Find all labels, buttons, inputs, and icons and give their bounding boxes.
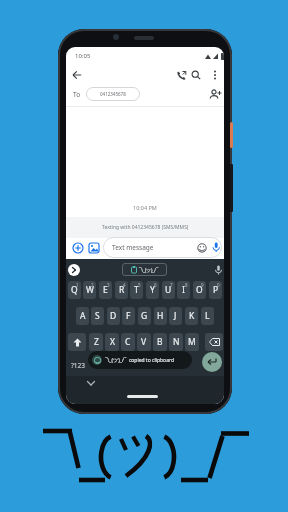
button[interactable]: Y xyxy=(146,281,159,299)
staticText: 5 xyxy=(138,282,141,288)
staticText: I xyxy=(182,284,185,296)
button[interactable]: ?123 xyxy=(68,357,88,374)
staticText: Z xyxy=(94,336,99,348)
button[interactable]: M xyxy=(185,333,199,351)
button[interactable] xyxy=(72,70,82,80)
button[interactable]: I xyxy=(177,281,190,299)
staticText: T xyxy=(134,284,139,296)
staticText: 4 xyxy=(123,282,126,288)
staticText: 10:04 PM xyxy=(133,204,157,211)
staticText: P xyxy=(213,284,219,296)
staticText: 10:05 xyxy=(75,52,91,60)
staticText: H xyxy=(157,310,164,322)
staticText: ?123 xyxy=(71,361,85,370)
staticText: D xyxy=(110,310,117,322)
button[interactable]: D xyxy=(107,307,120,325)
button[interactable]: T xyxy=(130,281,143,299)
button[interactable]: 0412345678 xyxy=(86,87,140,101)
staticText: Text message xyxy=(112,243,154,252)
button[interactable] xyxy=(211,242,221,253)
staticText: O xyxy=(196,284,203,296)
staticText: 0 xyxy=(217,282,220,288)
button[interactable]: C xyxy=(121,333,135,351)
button[interactable]: H xyxy=(154,307,167,325)
button[interactable]: V xyxy=(137,333,151,351)
button[interactable] xyxy=(68,264,80,276)
button[interactable] xyxy=(68,333,86,351)
staticText: 0412345678 xyxy=(100,91,126,97)
staticText: X xyxy=(110,336,115,348)
button[interactable]: F xyxy=(122,307,135,325)
button[interactable]: G xyxy=(138,307,151,325)
staticText: J xyxy=(174,310,177,322)
button[interactable]: W xyxy=(83,281,96,299)
staticText: Y xyxy=(150,284,155,296)
button[interactable]: K xyxy=(185,307,198,325)
staticText: ¯\_(ツ)_/¯ copied to clipboard xyxy=(105,357,174,364)
staticText: Q xyxy=(71,284,78,296)
staticText: A xyxy=(80,310,86,322)
staticText: K xyxy=(189,310,195,322)
button[interactable]: J xyxy=(169,307,182,325)
button[interactable]: N xyxy=(169,333,183,351)
button[interactable] xyxy=(208,89,221,100)
staticText: 7 xyxy=(170,282,173,288)
staticText: L xyxy=(205,310,210,322)
button[interactable]: U xyxy=(162,281,175,299)
button[interactable] xyxy=(205,333,223,351)
staticText: To xyxy=(73,90,81,99)
button[interactable]: X xyxy=(105,333,119,351)
button[interactable]: Text message xyxy=(103,237,222,258)
staticText: U xyxy=(165,284,172,296)
staticText: E xyxy=(103,284,108,296)
button[interactable] xyxy=(72,242,84,254)
button[interactable]: O xyxy=(193,281,206,299)
staticText: 9 xyxy=(201,282,204,288)
button[interactable] xyxy=(202,352,222,372)
staticText: 6 xyxy=(154,282,157,288)
button[interactable] xyxy=(176,70,186,80)
button[interactable]: ¯\_(ツ)_/¯ xyxy=(122,263,167,276)
staticText: N xyxy=(173,336,180,348)
staticText: 8 xyxy=(185,282,188,288)
button[interactable]: E xyxy=(99,281,112,299)
staticText: S xyxy=(95,310,100,322)
staticText: R xyxy=(119,284,125,296)
button[interactable] xyxy=(87,381,95,386)
staticText: F xyxy=(126,310,131,322)
button[interactable]: S xyxy=(91,307,104,325)
button[interactable]: ¯\_(ツ)_/¯ copied to clipboard xyxy=(88,351,192,369)
button[interactable]: Q xyxy=(68,281,81,299)
button[interactable] xyxy=(88,242,100,254)
staticText: W xyxy=(86,284,94,296)
staticText: 2 xyxy=(91,282,94,288)
staticText: ¯\_(ツ)_/¯ xyxy=(139,267,159,273)
staticText: V xyxy=(141,336,147,348)
button[interactable] xyxy=(191,70,201,80)
button[interactable]: Z xyxy=(89,333,103,351)
button[interactable]: A xyxy=(76,307,89,325)
staticText: G xyxy=(141,310,148,322)
staticText: C xyxy=(125,336,131,348)
staticText: B xyxy=(157,336,163,348)
button[interactable]: B xyxy=(153,333,167,351)
button[interactable]: R xyxy=(115,281,128,299)
button[interactable]: P xyxy=(209,281,222,299)
button[interactable] xyxy=(214,265,223,276)
staticText: Texting with 0412345678 (SMS/MMS) xyxy=(102,224,189,231)
button[interactable]: L xyxy=(201,307,214,325)
staticText: M xyxy=(188,336,196,348)
staticText: 1 xyxy=(76,282,79,288)
staticText: 3 xyxy=(107,282,110,288)
button[interactable] xyxy=(210,70,220,80)
